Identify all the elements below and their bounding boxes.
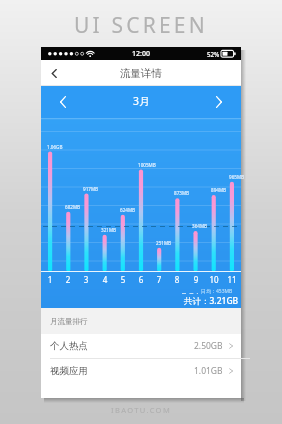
staticText: 965MB xyxy=(229,174,245,180)
staticText: 2 xyxy=(58,274,78,285)
staticText: 1.06GB xyxy=(47,144,63,150)
staticText: 364MB xyxy=(192,223,208,229)
staticText: 52% xyxy=(207,50,220,58)
staticText: 5 xyxy=(113,274,133,285)
staticText: 917MB xyxy=(83,186,99,192)
button[interactable]: Back xyxy=(41,60,67,86)
staticText: 1005MB xyxy=(138,162,156,168)
staticText: 624MB xyxy=(120,207,136,213)
staticText: 10 xyxy=(204,274,224,285)
staticText: 个人热点 xyxy=(50,340,88,352)
staticText: 6 xyxy=(131,274,151,285)
staticText: 2.50GB xyxy=(194,340,223,352)
staticText: 月流量排行 xyxy=(50,317,88,326)
staticText: 流量详情 xyxy=(120,67,162,80)
button[interactable]: Next month xyxy=(208,91,230,113)
staticText: 共计：3.21GB xyxy=(184,295,239,307)
staticText: 4 xyxy=(95,274,115,285)
staticText: 682MB xyxy=(65,204,81,210)
staticText: 9 xyxy=(186,274,206,285)
staticText: 7 xyxy=(149,274,169,285)
staticText: 873MB xyxy=(174,190,190,196)
staticText: 3月 xyxy=(133,94,150,108)
staticText: 1 xyxy=(40,274,60,285)
staticText: IBAOTU.COM xyxy=(111,405,172,415)
staticText: 1.01GB xyxy=(194,365,223,377)
staticText: 321MB xyxy=(101,227,117,233)
staticText: 3 xyxy=(76,274,96,285)
staticText: 12:00 xyxy=(132,49,150,59)
button[interactable]: Previous month xyxy=(52,91,74,113)
button[interactable]: 视频应用 xyxy=(41,359,241,383)
staticText: UI SCREEN xyxy=(74,11,208,40)
staticText: 日均：453MB xyxy=(201,288,233,295)
staticText: 8 xyxy=(167,274,187,285)
staticText: 894MB xyxy=(211,187,227,193)
staticText: 视频应用 xyxy=(50,365,88,377)
staticText: 251MB xyxy=(156,240,172,246)
staticText: 11 xyxy=(222,274,242,285)
button[interactable]: 个人热点 xyxy=(41,334,241,358)
